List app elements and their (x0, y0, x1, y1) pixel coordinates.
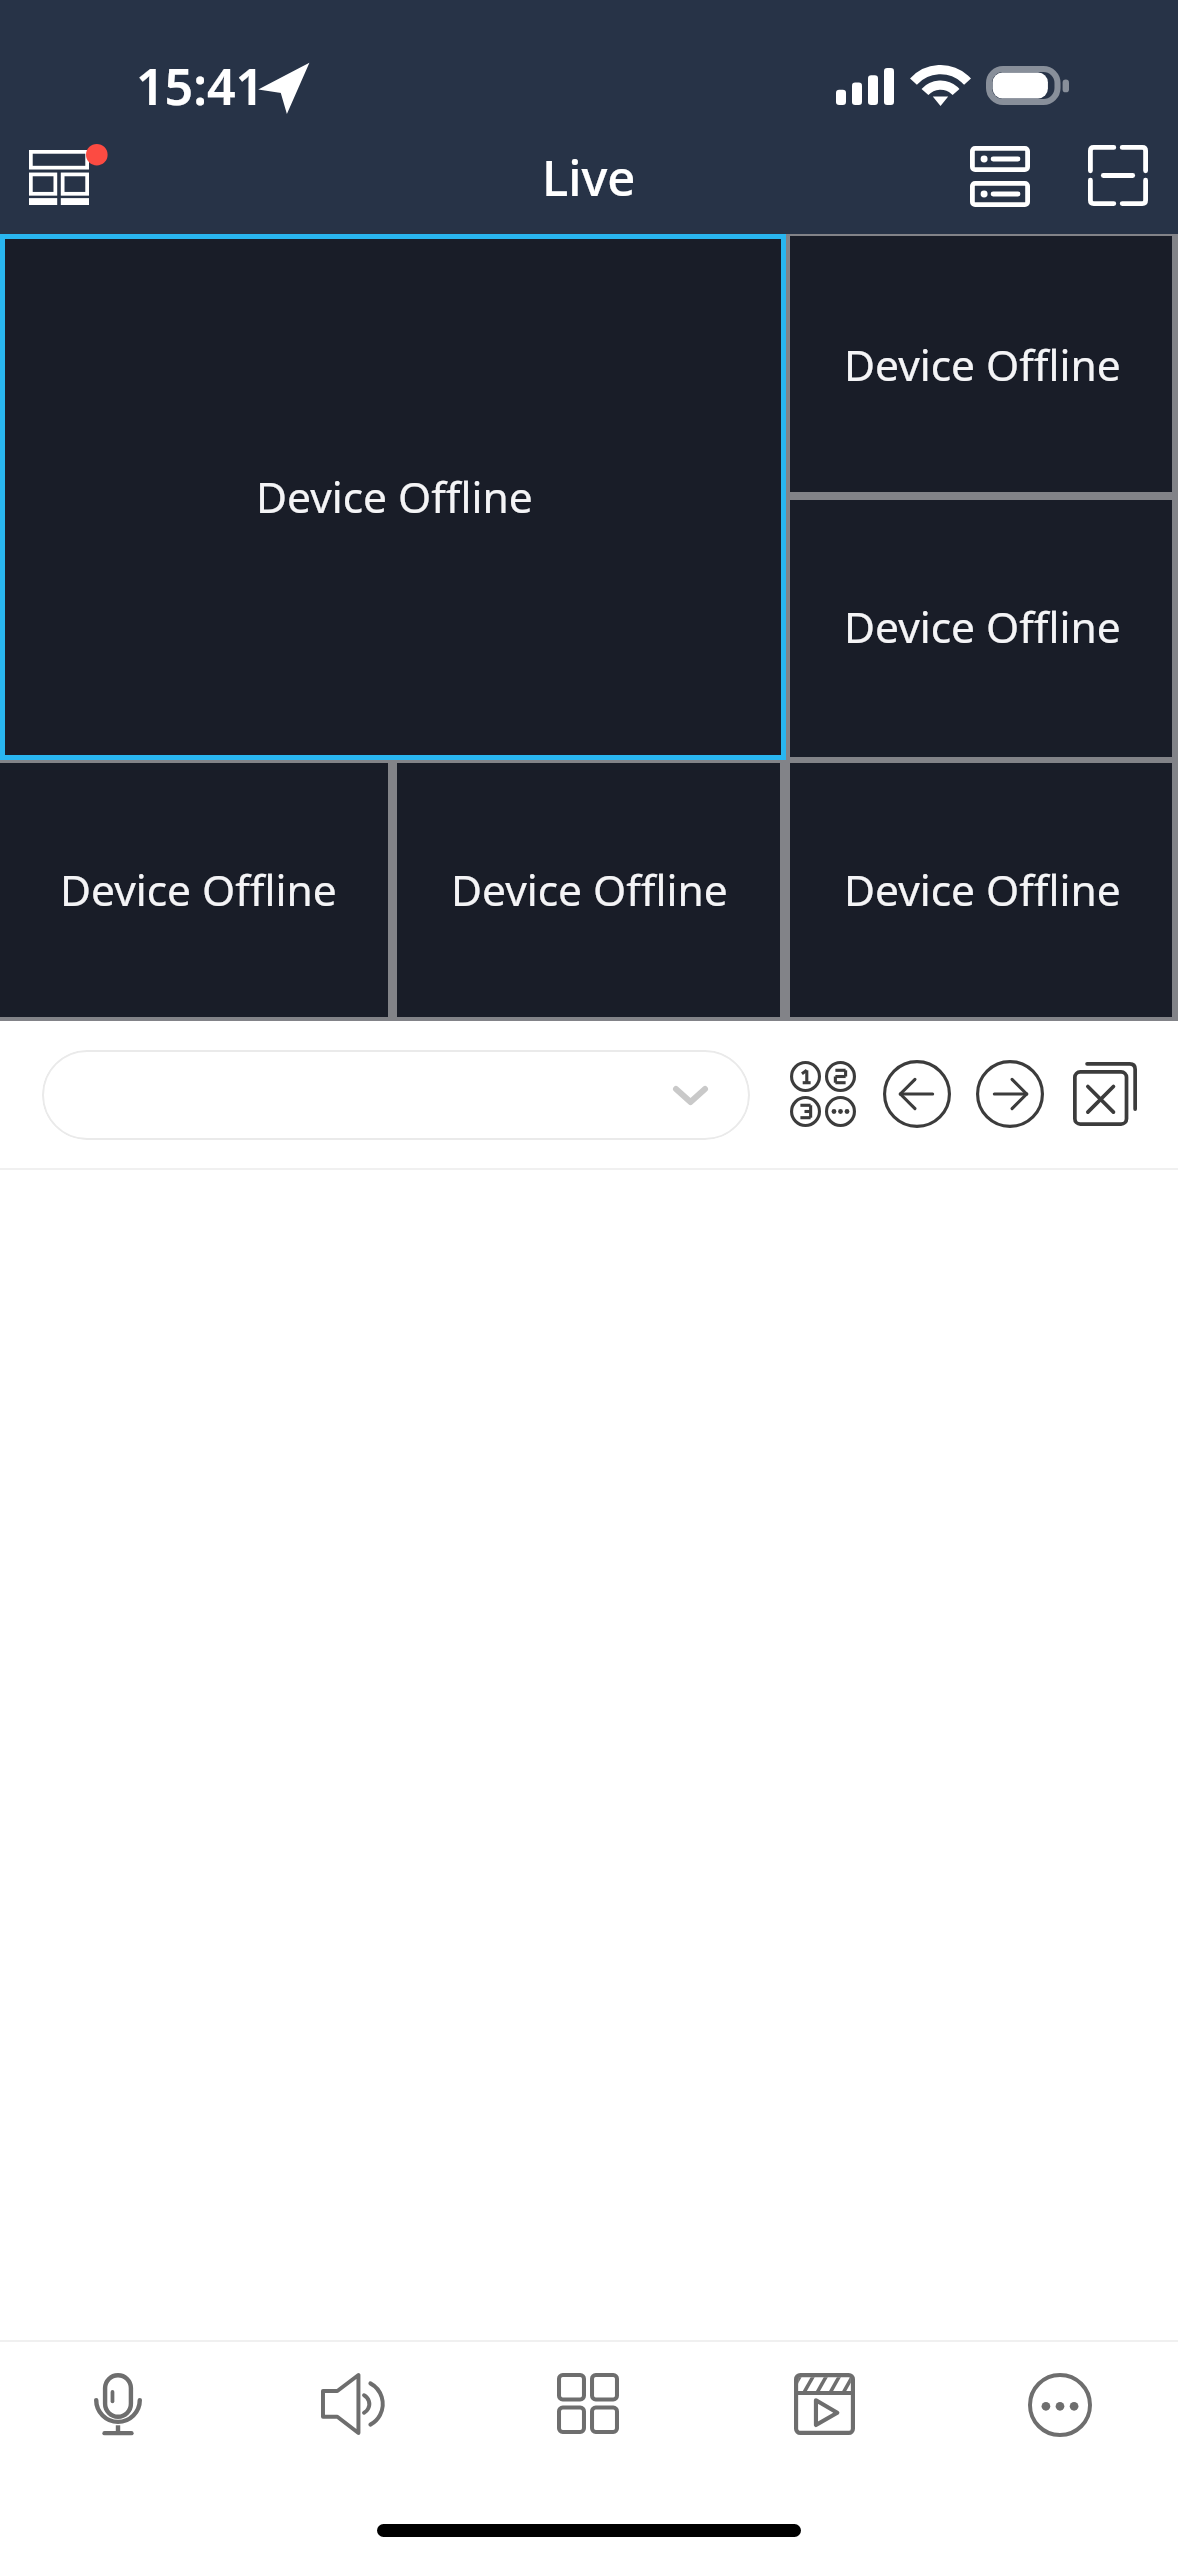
button[interactable]: More (942, 2342, 1178, 2470)
staticText: Live (542, 144, 636, 211)
staticText: Device Offline (844, 598, 1121, 656)
button[interactable]: Camera channel (0, 234, 786, 760)
button[interactable]: Record (706, 2342, 942, 2470)
button[interactable]: Camera channel (0, 763, 388, 1017)
button[interactable]: Channels (778, 1049, 868, 1139)
button[interactable]: Next (965, 1049, 1055, 1139)
staticText: Device Offline (60, 861, 337, 919)
button[interactable]: Scan (1068, 128, 1168, 228)
button[interactable]: Close all (1060, 1049, 1150, 1139)
staticText: Device Offline (451, 861, 728, 919)
staticText: Device Offline (844, 861, 1121, 919)
button[interactable]: Camera channel (397, 763, 780, 1017)
button[interactable]: Microphone (0, 2342, 235, 2470)
staticText: Device Offline (256, 468, 533, 526)
button[interactable]: Camera channel (790, 763, 1172, 1017)
staticText: Device Offline (844, 336, 1121, 394)
button[interactable]: Speaker (235, 2342, 470, 2470)
button[interactable]: Devices (950, 128, 1050, 228)
button[interactable]: Select channel (42, 1050, 750, 1140)
button[interactable]: Camera channel (790, 500, 1172, 757)
button[interactable]: Previous (872, 1049, 962, 1139)
staticText: 15:41 (136, 52, 265, 120)
button[interactable]: Layout (9, 128, 109, 228)
button[interactable]: Layout (470, 2342, 706, 2470)
button[interactable]: Camera channel (790, 236, 1172, 492)
